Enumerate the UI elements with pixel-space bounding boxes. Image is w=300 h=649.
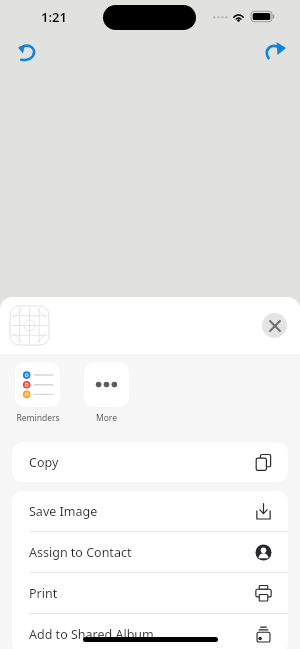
button[interactable]: Save Image xyxy=(12,491,288,532)
staticText: Add to Shared Album xyxy=(29,626,255,643)
button[interactable]: Redo xyxy=(252,28,296,72)
button[interactable]: Assign to Contact xyxy=(12,532,288,573)
staticText: Assign to Contact xyxy=(29,544,255,561)
staticText: Save Image xyxy=(29,503,255,520)
staticText: Copy xyxy=(29,454,255,471)
staticText: 1:21 xyxy=(41,8,67,26)
button[interactable]: Close xyxy=(262,313,287,338)
staticText: Print xyxy=(29,585,255,602)
staticText: More xyxy=(96,412,117,424)
button[interactable]: Add to Shared Album xyxy=(12,614,288,649)
button[interactable]: Reminders xyxy=(12,362,63,424)
button[interactable]: Undo xyxy=(4,28,48,72)
button[interactable]: Copy xyxy=(12,442,288,482)
button[interactable]: More xyxy=(81,362,132,424)
button[interactable]: Print xyxy=(12,573,288,614)
staticText: Reminders xyxy=(16,412,60,424)
